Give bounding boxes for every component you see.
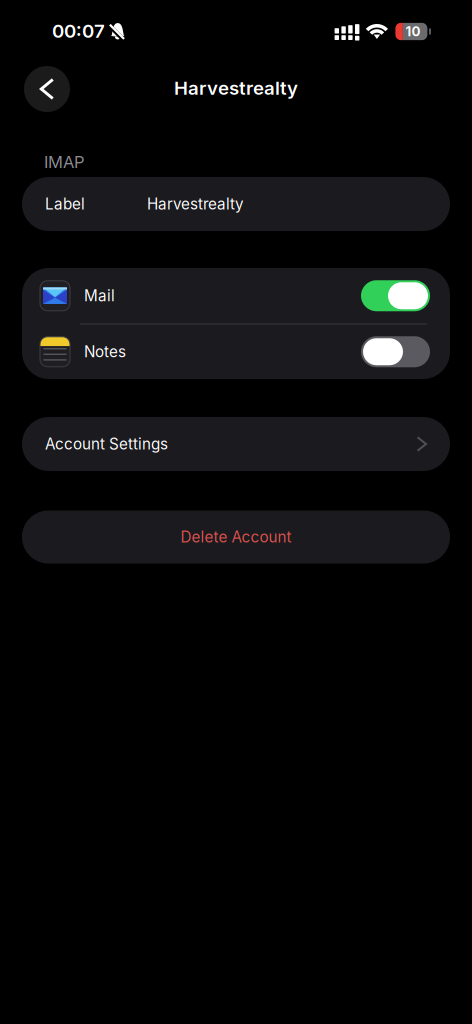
- staticText: Notes: [84, 343, 126, 361]
- staticText: Harvestrealty: [174, 77, 298, 99]
- staticText: Mail: [84, 287, 115, 305]
- button[interactable]: Account Settings: [22, 417, 450, 471]
- button[interactable]: Notes: [22, 324, 450, 379]
- staticText: Delete Account: [180, 528, 291, 546]
- staticText: Label: [45, 195, 85, 213]
- staticText: IMAP: [44, 152, 85, 172]
- staticText: 00:07: [52, 20, 105, 42]
- staticText: Account Settings: [45, 435, 168, 453]
- staticText: Harvestrealty: [147, 195, 244, 213]
- button[interactable]: Mail: [22, 268, 450, 323]
- button[interactable]: Back: [24, 66, 70, 112]
- staticText: 10: [405, 23, 420, 39]
- button[interactable]: Delete Account: [22, 510, 450, 563]
